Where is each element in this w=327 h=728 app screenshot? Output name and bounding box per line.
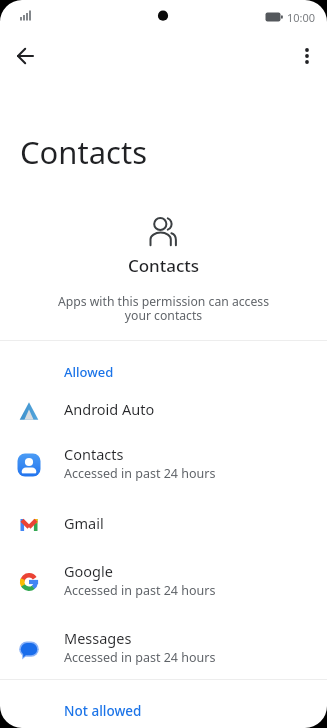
staticText: Contacts <box>20 131 148 173</box>
button[interactable]: Android Auto <box>0 387 327 435</box>
button[interactable]: Google <box>0 550 327 614</box>
staticText: Not allowed <box>64 702 142 720</box>
staticText: Contacts <box>0 254 327 277</box>
button[interactable]: Gmail <box>0 501 327 549</box>
staticText: Allowed <box>64 363 114 381</box>
staticText: Messages <box>64 628 132 648</box>
button[interactable] <box>295 42 320 72</box>
staticText: Accessed in past 24 hours <box>64 649 216 666</box>
button[interactable] <box>10 42 40 72</box>
button[interactable]: Messages <box>0 617 327 681</box>
staticText: Apps with this permission can access you… <box>0 293 327 324</box>
staticText: Google <box>64 561 113 581</box>
button[interactable]: Contacts <box>0 433 327 497</box>
staticText: Accessed in past 24 hours <box>64 582 216 599</box>
staticText: Android Auto <box>64 399 155 419</box>
staticText: 10:00 <box>287 10 316 25</box>
staticText: Contacts <box>64 444 124 464</box>
staticText: Accessed in past 24 hours <box>64 465 216 482</box>
staticText: Gmail <box>64 513 104 533</box>
